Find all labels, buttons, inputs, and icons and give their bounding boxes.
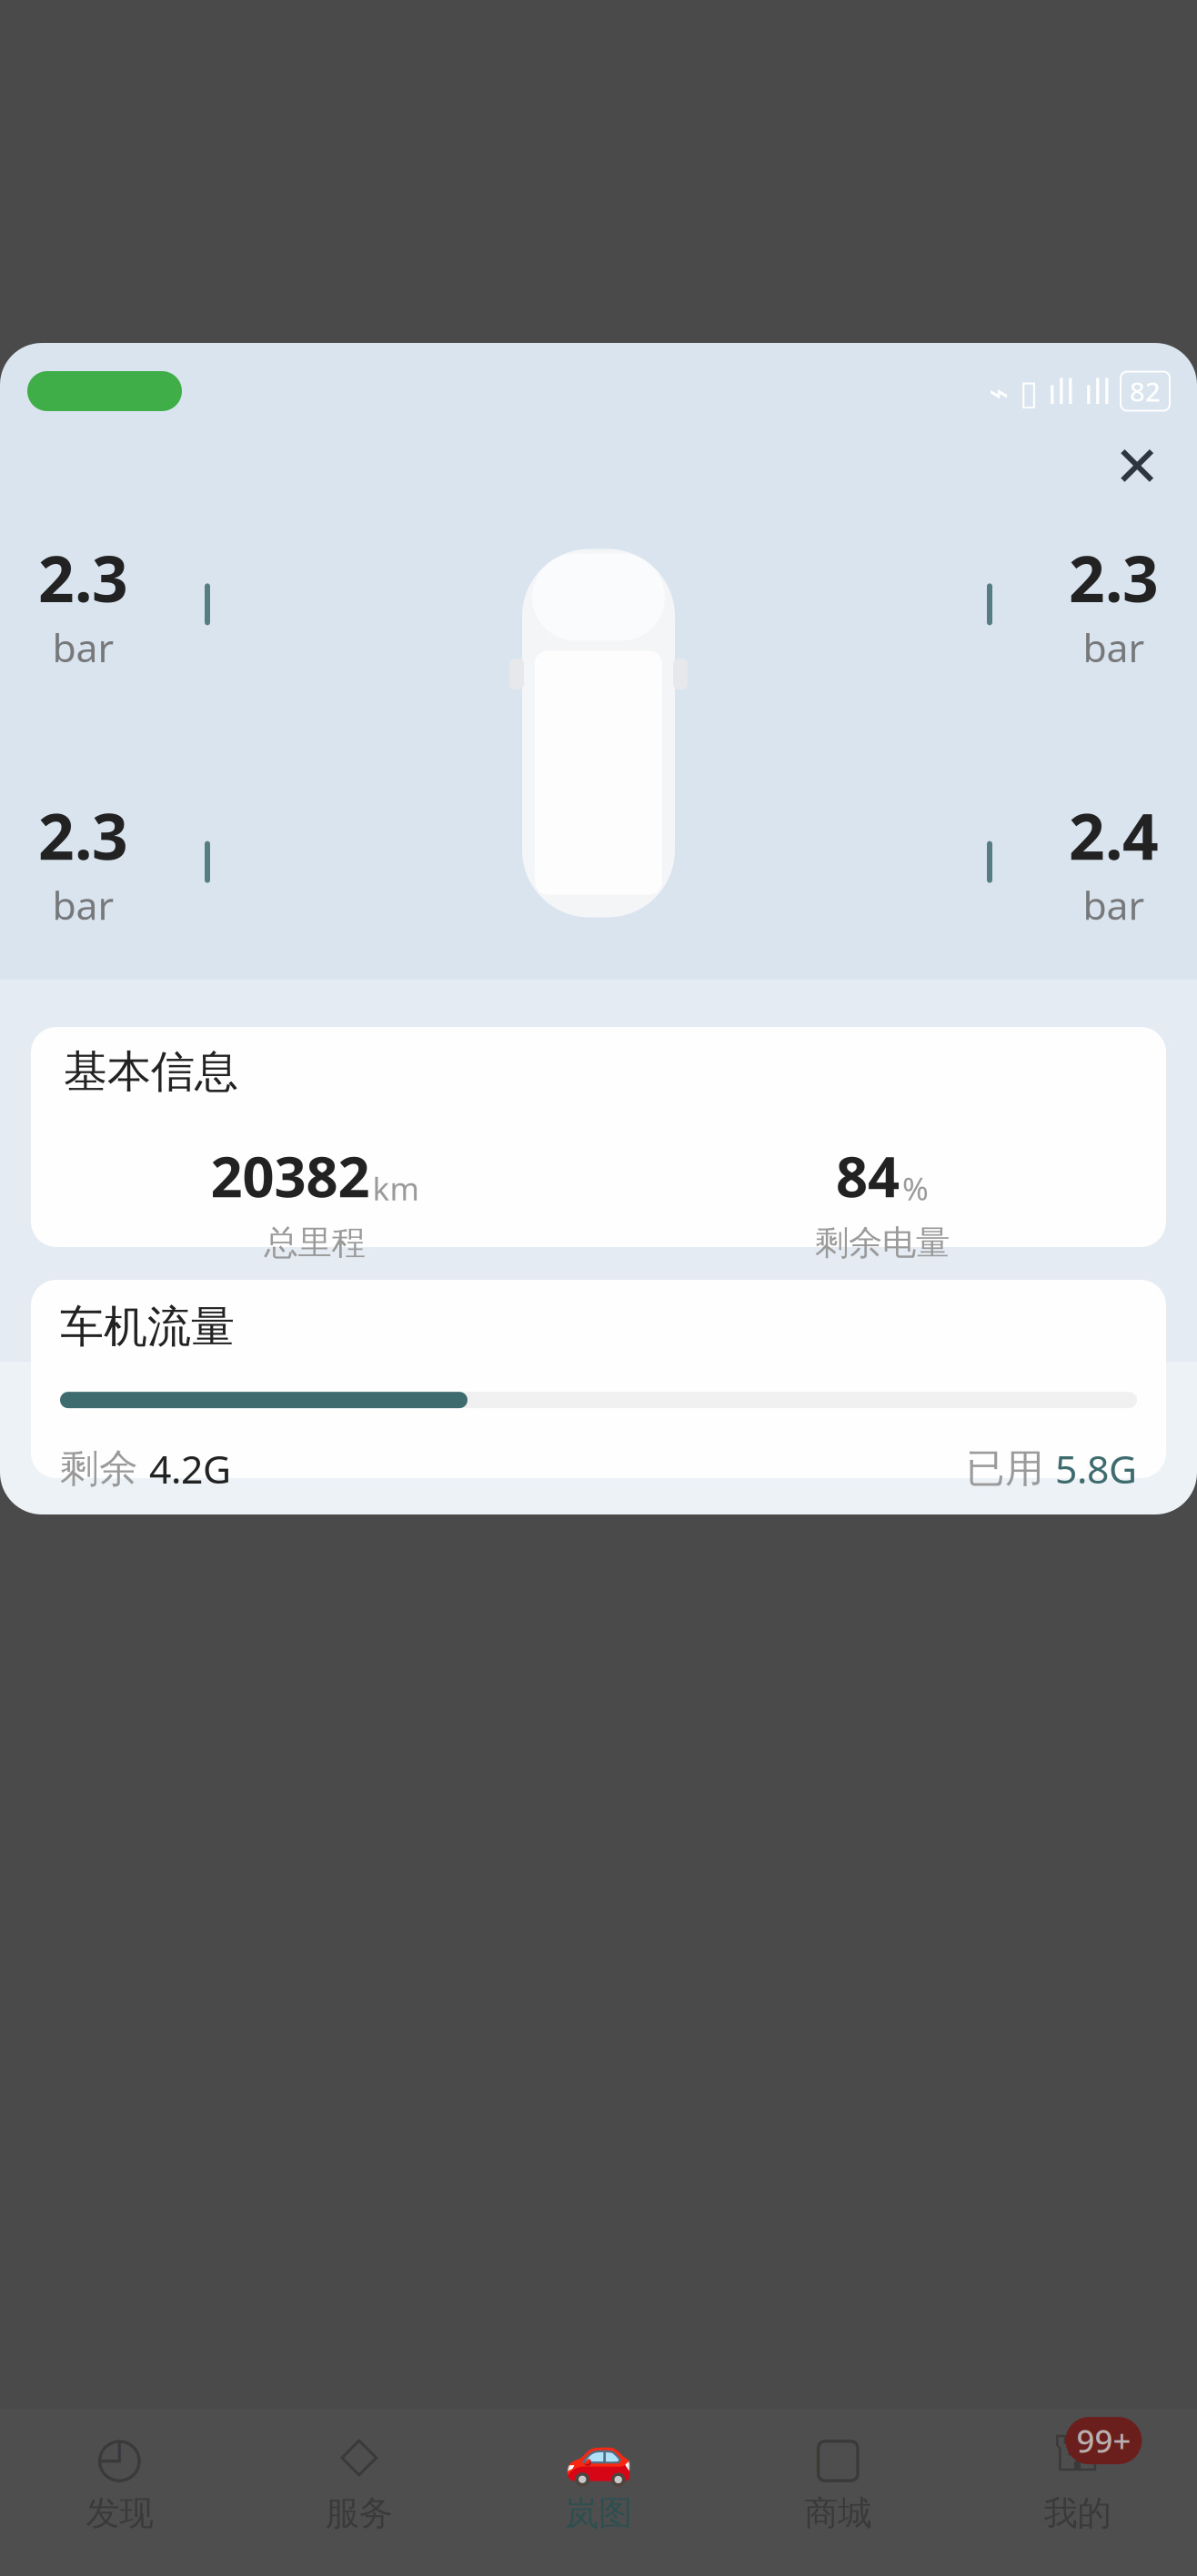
staticText: 已用 bbox=[966, 1445, 1044, 1492]
staticText: ▢ bbox=[812, 2424, 864, 2488]
staticText: 2.3 bbox=[1069, 536, 1159, 620]
staticText: 25.0 bbox=[62, 1007, 188, 1091]
staticText: % bbox=[902, 1167, 929, 1209]
staticText: ✕ bbox=[1114, 435, 1160, 498]
staticText: 2.3 bbox=[38, 793, 128, 877]
staticText: bar bbox=[52, 621, 114, 673]
staticText: 5.8G bbox=[1055, 1443, 1137, 1494]
button[interactable]: ◴ bbox=[0, 2431, 239, 2534]
button[interactable]: ⬦ bbox=[239, 2431, 479, 2534]
button[interactable]: 哨兵模式 bbox=[35, 1290, 589, 1437]
staticText: 20382 bbox=[211, 1139, 370, 1213]
button[interactable]: ✳ bbox=[35, 1142, 312, 1278]
button[interactable]: 车载冰箱 bbox=[608, 1290, 1162, 1437]
staticText: 🚗 bbox=[564, 2424, 633, 2488]
staticText: ⌁ ▯ ıll ıll bbox=[989, 369, 1111, 414]
staticText: 总里程 bbox=[264, 1222, 365, 1264]
staticText: 扫一扫 bbox=[969, 1246, 1078, 1291]
staticText: 剩余 bbox=[60, 1445, 138, 1492]
staticText: ℃ bbox=[188, 1025, 225, 1073]
staticText: 82 bbox=[1130, 373, 1161, 409]
staticText: ⬦ bbox=[340, 2429, 379, 2483]
staticText: 极速加热 bbox=[378, 1233, 523, 1278]
staticText: bar bbox=[1083, 879, 1145, 931]
staticText: 发现 bbox=[86, 2492, 153, 2534]
button[interactable]: ☀ bbox=[312, 1142, 589, 1278]
staticText: 84 bbox=[836, 1139, 900, 1213]
staticText: 84 bbox=[635, 1025, 708, 1109]
staticText: 充电设置 bbox=[674, 1251, 819, 1296]
staticText: 服务 bbox=[325, 2492, 393, 2534]
staticText: ⛫ bbox=[1052, 2429, 1103, 2483]
staticText: km bbox=[372, 1167, 419, 1209]
button[interactable]: Close bbox=[1101, 430, 1173, 503]
button[interactable]: ▢ bbox=[718, 2431, 958, 2534]
staticText: bar bbox=[1083, 621, 1145, 673]
staticText: 已开启 bbox=[67, 1395, 163, 1434]
staticText: 已关闭 bbox=[640, 1395, 736, 1434]
button[interactable]: ⌫ bbox=[608, 1160, 885, 1296]
button[interactable]: ⛫ bbox=[958, 2431, 1197, 2534]
staticText: 哨兵模式 bbox=[58, 1322, 222, 1373]
staticText: 99+ bbox=[1076, 2420, 1131, 2461]
staticText: ◴ bbox=[95, 2424, 144, 2488]
staticText: 车机流量 bbox=[60, 1300, 235, 1354]
staticText: 商城 bbox=[804, 2492, 872, 2534]
staticText: 岚图 bbox=[565, 2492, 632, 2534]
button[interactable]: 🚗 bbox=[479, 2431, 718, 2534]
staticText: 2.3 bbox=[38, 536, 128, 620]
staticText: 基本信息 bbox=[64, 1045, 238, 1099]
staticText: 极速制冷 bbox=[101, 1233, 246, 1278]
staticText: 我的 bbox=[1044, 2492, 1111, 2534]
staticText: 4.2G bbox=[149, 1443, 231, 1494]
staticText: bar bbox=[52, 879, 114, 931]
button[interactable]: ⛶ bbox=[885, 1165, 1162, 1291]
staticText: 剩余电量 bbox=[815, 1222, 950, 1264]
staticText: 2.4 bbox=[1069, 793, 1159, 877]
